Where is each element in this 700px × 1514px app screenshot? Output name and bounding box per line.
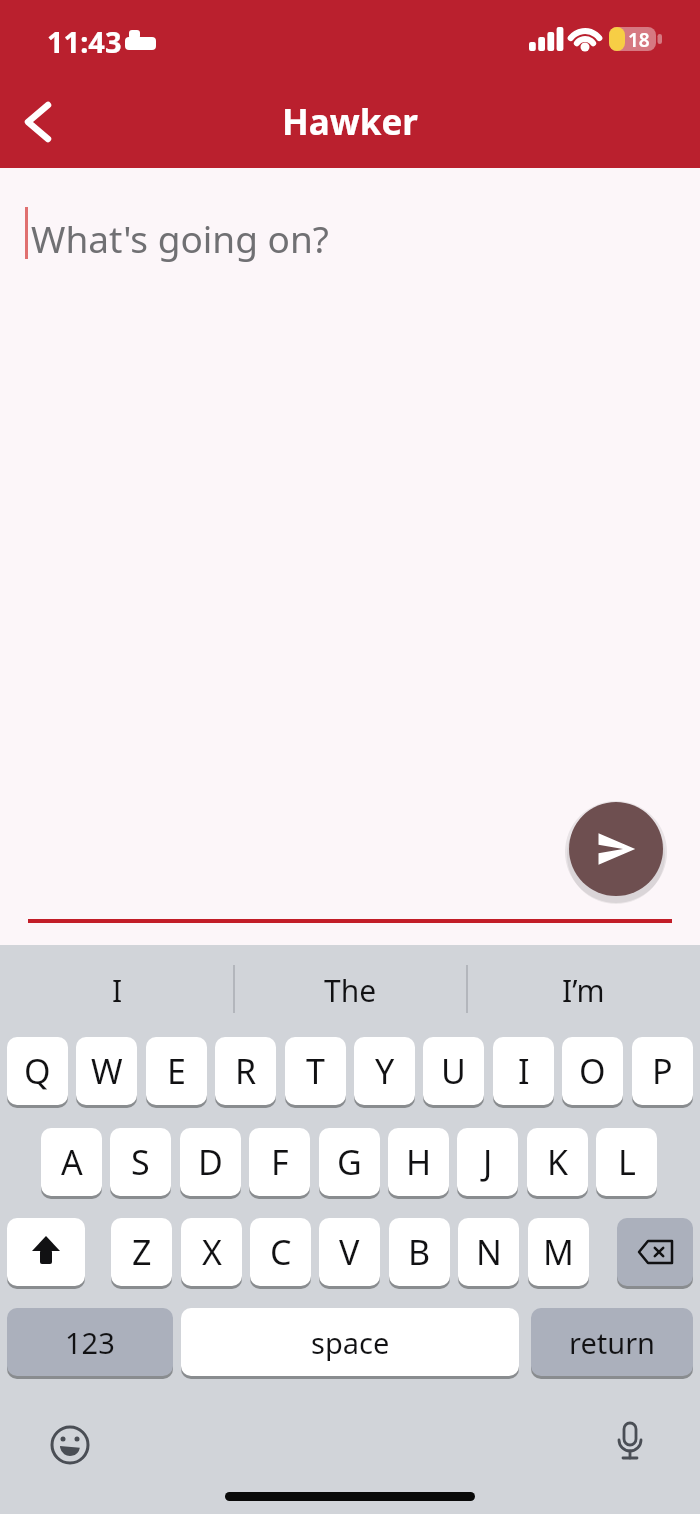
button[interactable]: C <box>250 1218 311 1286</box>
button[interactable]: 123 <box>7 1308 173 1376</box>
staticText: C <box>270 1229 292 1275</box>
button[interactable]: U <box>423 1037 484 1105</box>
staticText: Y <box>375 1048 395 1094</box>
button[interactable]: return <box>531 1308 693 1376</box>
button[interactable]: D <box>180 1128 241 1196</box>
button[interactable] <box>569 802 663 896</box>
button[interactable]: B <box>389 1218 450 1286</box>
staticText: O <box>579 1048 606 1094</box>
button[interactable]: E <box>146 1037 207 1105</box>
button[interactable]: The <box>270 963 430 1017</box>
button[interactable]: Q <box>7 1037 68 1105</box>
staticText: D <box>198 1139 223 1185</box>
staticText: J <box>483 1139 493 1185</box>
staticText: L <box>618 1139 636 1185</box>
staticText: Hawker <box>282 98 418 146</box>
staticText: M <box>543 1229 574 1275</box>
staticText: I <box>518 1048 530 1094</box>
button[interactable]: F <box>249 1128 310 1196</box>
staticText: A <box>61 1139 83 1185</box>
staticText: return <box>569 1323 656 1362</box>
button[interactable]: P <box>632 1037 693 1105</box>
staticText: H <box>406 1139 432 1185</box>
button[interactable]: T <box>285 1037 346 1105</box>
staticText: 18 <box>628 27 650 51</box>
button[interactable] <box>46 1421 94 1469</box>
button[interactable]: O <box>562 1037 623 1105</box>
staticText: U <box>441 1048 466 1094</box>
staticText: B <box>408 1229 431 1275</box>
button[interactable]: M <box>528 1218 589 1286</box>
button[interactable]: I’m <box>503 963 663 1017</box>
staticText: E <box>167 1048 186 1094</box>
staticText: 11:43 <box>47 22 122 61</box>
button[interactable]: X <box>181 1218 242 1286</box>
staticText: S <box>131 1139 150 1185</box>
button[interactable]: R <box>215 1037 276 1105</box>
button[interactable]: G <box>319 1128 380 1196</box>
button[interactable]: J <box>457 1128 518 1196</box>
button[interactable]: H <box>388 1128 449 1196</box>
button[interactable]: space <box>181 1308 519 1376</box>
button[interactable]: I <box>37 963 197 1017</box>
staticText: I <box>112 970 123 1011</box>
button[interactable] <box>617 1218 693 1286</box>
staticText: V <box>339 1229 360 1275</box>
staticText: What's going on? <box>31 213 329 263</box>
button[interactable]: N <box>458 1218 519 1286</box>
staticText: F <box>271 1139 289 1185</box>
staticText: The <box>324 970 377 1011</box>
staticText: 123 <box>65 1323 115 1362</box>
staticText: K <box>547 1139 569 1185</box>
staticText: T <box>306 1048 325 1094</box>
button[interactable]: L <box>596 1128 657 1196</box>
button[interactable]: S <box>110 1128 171 1196</box>
button[interactable] <box>606 1417 654 1469</box>
button[interactable]: W <box>76 1037 137 1105</box>
staticText: R <box>235 1048 257 1094</box>
button[interactable] <box>7 1218 85 1286</box>
staticText: Q <box>24 1048 51 1094</box>
staticText: P <box>652 1048 673 1094</box>
button[interactable]: K <box>527 1128 588 1196</box>
staticText: I’m <box>562 970 605 1011</box>
button[interactable]: A <box>41 1128 102 1196</box>
button[interactable]: Z <box>111 1218 172 1286</box>
staticText: X <box>202 1229 222 1275</box>
staticText: W <box>91 1048 123 1094</box>
staticText: G <box>337 1139 362 1185</box>
button[interactable] <box>10 92 70 152</box>
staticText: N <box>476 1229 502 1275</box>
button[interactable]: Y <box>354 1037 415 1105</box>
button[interactable]: I <box>493 1037 554 1105</box>
staticText: space <box>311 1323 390 1362</box>
button[interactable]: V <box>319 1218 380 1286</box>
staticText: Z <box>132 1229 152 1275</box>
